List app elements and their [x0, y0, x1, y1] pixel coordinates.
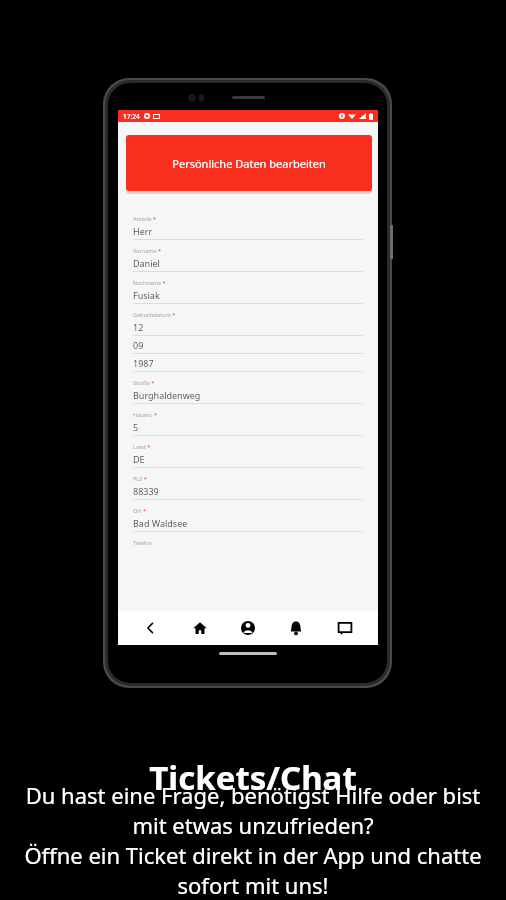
staticText: DE: [133, 453, 145, 465]
staticText: Tickets/Chat: [149, 755, 357, 800]
staticText: Geburtsdatum *: [133, 311, 176, 318]
button[interactable]: Persönliche Daten bearbeiten: [126, 135, 372, 191]
staticText: 17:24: [123, 112, 140, 121]
button[interactable]: Geburtsdatum *: [133, 304, 363, 372]
staticText: 1987: [133, 357, 154, 369]
button[interactable]: Notifications: [281, 613, 311, 643]
button[interactable]: Anrede *: [133, 208, 363, 240]
staticText: Land *: [133, 443, 151, 450]
button[interactable]: Vorname *: [133, 240, 363, 272]
staticText: Persönliche Daten bearbeiten: [172, 156, 326, 171]
staticText: Bad Waldsee: [133, 517, 188, 529]
staticText: Hausnr. *: [133, 411, 157, 418]
staticText: Vorname *: [133, 247, 161, 254]
button[interactable]: Chat: [330, 613, 360, 643]
staticText: Herr: [133, 225, 153, 237]
button[interactable]: Back: [136, 613, 166, 643]
button[interactable]: Nachname *: [133, 272, 363, 304]
staticText: 5: [133, 421, 139, 433]
staticText: 88339: [133, 485, 159, 497]
staticText: 12: [133, 321, 144, 333]
staticText: Burghaldenweg: [133, 389, 201, 401]
staticText: Du hast eine Frage, benötigst Hilfe oder…: [14, 780, 492, 900]
button[interactable]: Straße *: [133, 372, 363, 404]
staticText: Telefon: [133, 539, 152, 546]
staticText: 09: [133, 339, 144, 351]
button[interactable]: Ort *: [133, 500, 363, 532]
staticText: Straße *: [133, 379, 155, 386]
button[interactable]: Home: [185, 613, 215, 643]
staticText: Fusiak: [133, 289, 160, 301]
button[interactable]: Land *: [133, 436, 363, 468]
staticText: Ort *: [133, 507, 147, 514]
staticText: PLZ *: [133, 475, 147, 482]
staticText: Nachname *: [133, 279, 166, 286]
button[interactable]: Account: [233, 613, 263, 643]
button[interactable]: Hausnr. *: [133, 404, 363, 436]
button[interactable]: PLZ *: [133, 468, 363, 500]
staticText: Anrede *: [133, 215, 157, 222]
staticText: Daniel: [133, 257, 160, 269]
